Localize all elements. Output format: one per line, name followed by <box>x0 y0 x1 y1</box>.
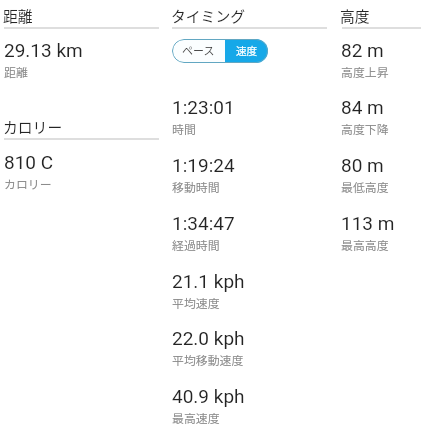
button[interactable]: 1:34:47 <box>172 212 327 254</box>
staticText: 高度上昇 <box>341 63 389 80</box>
staticText: 最高高度 <box>341 236 389 253</box>
button[interactable]: 29.13 km <box>4 39 159 81</box>
staticText: 82 m <box>341 39 384 61</box>
staticText: 84 m <box>341 96 384 118</box>
button[interactable]: 21.1 kph <box>172 270 327 312</box>
staticText: 速度 <box>236 43 258 58</box>
staticText: 経過時間 <box>172 236 220 253</box>
button[interactable]: ペース <box>172 39 225 63</box>
staticText: 時間 <box>172 120 196 137</box>
staticText: 29.13 km <box>4 39 83 61</box>
staticText: 平均移動速度 <box>172 351 244 368</box>
staticText: 40.9 kph <box>172 385 245 407</box>
button[interactable]: 1:19:24 <box>172 154 327 196</box>
staticText: 22.0 kph <box>172 327 245 349</box>
staticText: 113 m <box>341 212 395 234</box>
staticText: 1:23:01 <box>172 96 235 118</box>
staticText: 1:19:24 <box>172 154 235 176</box>
button[interactable]: 22.0 kph <box>172 327 327 369</box>
staticText: 21.1 kph <box>172 270 245 292</box>
staticText: 高度 <box>340 5 370 26</box>
staticText: 平均速度 <box>172 294 220 311</box>
staticText: 810 C <box>4 151 54 173</box>
button[interactable]: 810 C <box>4 151 159 193</box>
staticText: 移動時間 <box>172 178 220 195</box>
button[interactable]: 82 m <box>341 39 421 81</box>
staticText: 高度下降 <box>341 120 389 137</box>
button[interactable]: 113 m <box>341 212 421 254</box>
staticText: タイミング <box>171 5 245 26</box>
staticText: カロリー <box>4 175 52 192</box>
staticText: ペース <box>182 42 215 58</box>
staticText: 最高速度 <box>172 409 220 426</box>
staticText: 1:34:47 <box>172 212 235 234</box>
staticText: 最低高度 <box>341 178 389 195</box>
button[interactable]: 84 m <box>341 96 421 138</box>
button[interactable]: 40.9 kph <box>172 385 327 427</box>
staticText: 距離 <box>4 63 28 80</box>
button[interactable]: 速度 <box>225 39 268 63</box>
staticText: 80 m <box>341 154 384 176</box>
staticText: カロリー <box>3 116 63 137</box>
button[interactable]: 1:23:01 <box>172 96 327 138</box>
button[interactable]: 80 m <box>341 154 421 196</box>
staticText: 距離 <box>3 5 33 26</box>
button[interactable]: ペース <box>172 39 268 63</box>
